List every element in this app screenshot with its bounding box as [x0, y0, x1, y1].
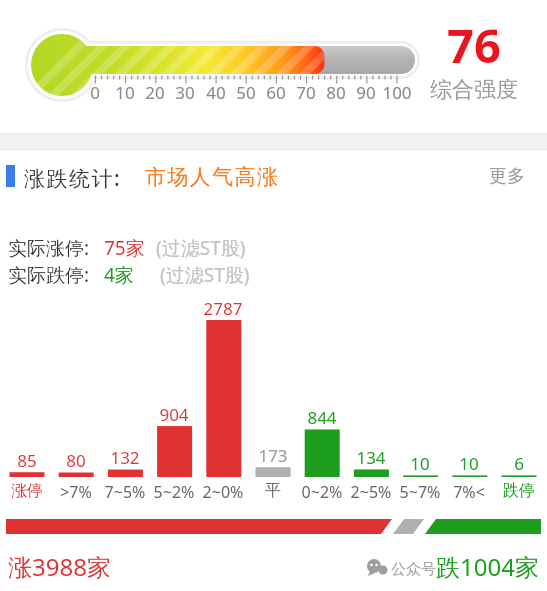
staticText: 跌1004家: [436, 550, 539, 583]
staticText: 2~5%: [341, 481, 401, 503]
button[interactable]: 涨跌统计:: [24, 164, 122, 193]
staticText: 80: [46, 449, 106, 472]
staticText: 173: [243, 444, 303, 467]
staticText: 100: [377, 81, 417, 104]
staticText: 60: [256, 81, 296, 104]
staticText: 涨3988家: [8, 550, 111, 583]
staticText: 75家: [104, 235, 145, 261]
staticText: 7~5%: [95, 481, 155, 503]
staticText: 132: [95, 446, 155, 469]
staticText: 844: [292, 406, 352, 429]
staticText: 7%<: [439, 481, 499, 503]
staticText: 50: [226, 81, 266, 104]
staticText: 85: [0, 449, 57, 472]
staticText: 90: [346, 81, 386, 104]
staticText: 0: [75, 81, 115, 104]
staticText: 5~7%: [390, 481, 450, 503]
staticText: 904: [144, 403, 204, 426]
staticText: 2~0%: [193, 481, 253, 503]
staticText: 10: [105, 81, 145, 104]
staticText: 70: [286, 81, 326, 104]
staticText: 涨停: [0, 481, 57, 501]
staticText: 40: [196, 81, 236, 104]
staticText: >7%: [46, 481, 106, 503]
staticText: 80: [316, 81, 356, 104]
staticText: 4家: [104, 262, 134, 288]
staticText: 20: [135, 81, 175, 104]
staticText: 6: [489, 452, 547, 475]
staticText: 综合强度: [424, 76, 524, 104]
staticText: 实际跌停:: [8, 262, 90, 288]
button[interactable]: 更多: [489, 165, 525, 188]
staticText: 30: [165, 81, 205, 104]
staticText: 公众号: [391, 560, 436, 579]
staticText: (过滤ST股): [160, 262, 250, 288]
staticText: 10: [390, 452, 450, 475]
staticText: 实际涨停:: [8, 235, 90, 261]
staticText: 2787: [193, 297, 253, 320]
staticText: (过滤ST股): [156, 235, 246, 261]
staticText: 5~2%: [144, 481, 204, 503]
staticText: 市场人气高涨: [145, 164, 280, 190]
staticText: 0~2%: [292, 481, 352, 503]
staticText: 76: [424, 13, 524, 77]
staticText: 10: [439, 452, 499, 475]
staticText: 跌停: [489, 481, 547, 501]
staticText: 平: [243, 481, 303, 501]
staticText: 134: [341, 446, 401, 469]
